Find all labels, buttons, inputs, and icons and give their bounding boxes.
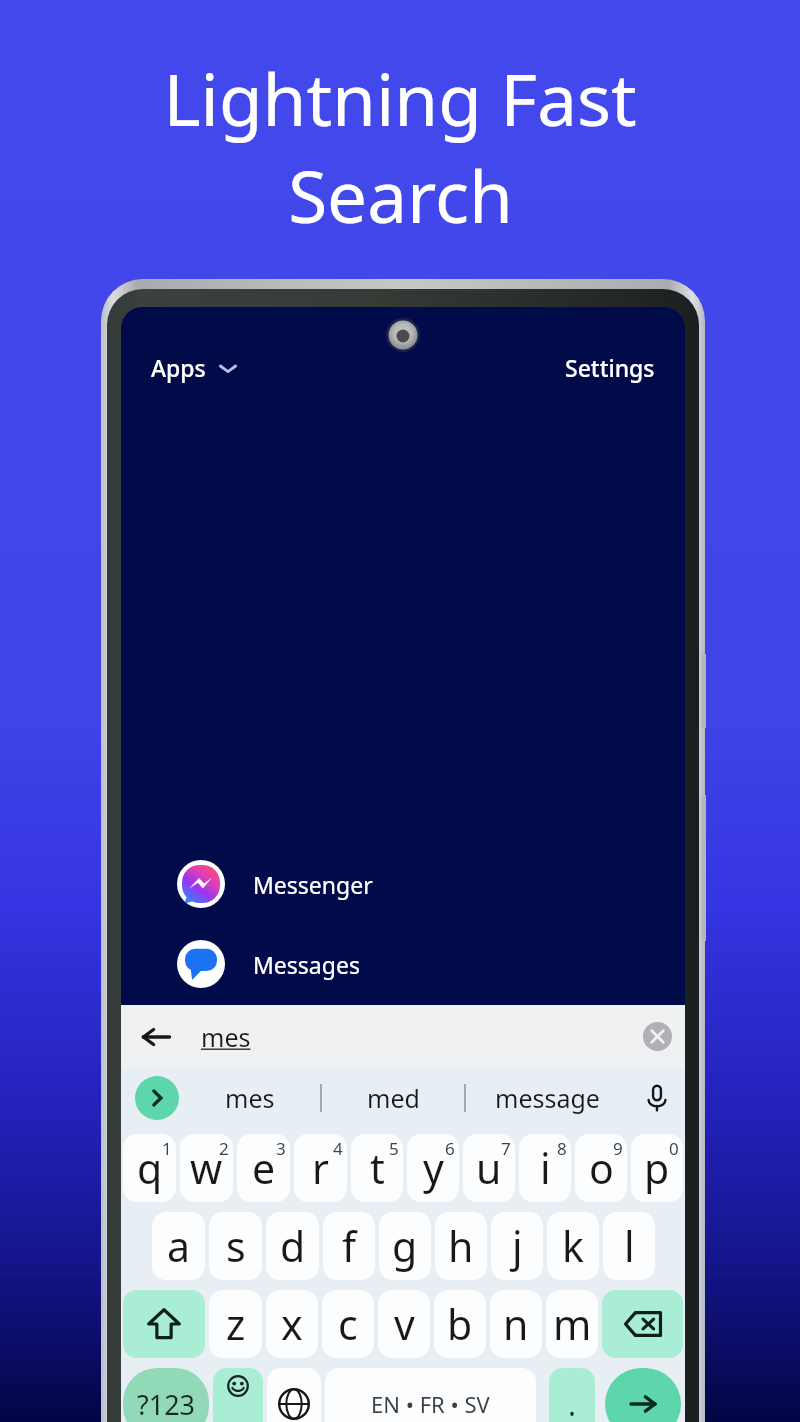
button[interactable]: r	[294, 1134, 347, 1202]
button[interactable]: f	[323, 1212, 375, 1280]
button[interactable]: l	[603, 1212, 655, 1280]
button[interactable]: h	[435, 1212, 487, 1280]
button[interactable]: Messages	[121, 936, 685, 992]
staticText: s	[226, 1218, 246, 1274]
staticText: mes	[225, 1081, 275, 1115]
button[interactable]: Change language	[267, 1368, 321, 1422]
button[interactable]: e	[237, 1134, 290, 1202]
button[interactable]: Clear search	[643, 1022, 672, 1051]
button[interactable]: Messenger	[121, 856, 685, 912]
button[interactable]: x	[266, 1290, 318, 1358]
button[interactable]: y	[407, 1134, 459, 1202]
button[interactable]: w	[180, 1134, 233, 1202]
button[interactable]: t	[351, 1134, 403, 1202]
staticText: g	[392, 1218, 418, 1274]
staticText: 7	[501, 1137, 511, 1160]
button[interactable]: mes	[179, 1068, 320, 1128]
staticText: 8	[557, 1137, 567, 1160]
button[interactable]: Expand suggestions	[135, 1076, 179, 1120]
staticText: Lightning Fast	[163, 50, 637, 147]
staticText: r	[312, 1140, 329, 1196]
button[interactable]: o	[575, 1134, 627, 1202]
staticText: Settings	[565, 352, 655, 383]
staticText: p	[644, 1140, 670, 1196]
staticText: h	[448, 1218, 474, 1274]
staticText: 5	[389, 1137, 399, 1160]
button[interactable]: j	[491, 1212, 543, 1280]
button[interactable]: Enter	[605, 1368, 681, 1422]
staticText: c	[338, 1296, 358, 1352]
staticText: b	[447, 1296, 473, 1352]
button[interactable]: Apps	[151, 352, 238, 383]
button[interactable]: b	[434, 1290, 486, 1358]
button[interactable]: Backspace	[602, 1290, 683, 1358]
staticText: v	[394, 1296, 415, 1352]
staticText: message	[495, 1081, 600, 1115]
staticText: Messages	[253, 949, 360, 980]
staticText: ?123	[137, 1386, 196, 1422]
staticText: 1	[162, 1137, 172, 1160]
staticText: q	[137, 1140, 163, 1196]
button[interactable]: Shift	[123, 1290, 205, 1358]
button[interactable]: Period	[549, 1368, 595, 1422]
button[interactable]: Voice input	[629, 1068, 685, 1128]
staticText: d	[280, 1218, 306, 1274]
staticText: o	[589, 1140, 614, 1196]
staticText: j	[512, 1218, 523, 1274]
button[interactable]: i	[519, 1134, 571, 1202]
staticText: EN • FR • SV	[371, 1389, 490, 1419]
staticText: Apps	[151, 352, 206, 383]
button[interactable]: Emoji	[213, 1368, 263, 1422]
staticText: w	[190, 1140, 223, 1196]
button[interactable]: med	[322, 1068, 464, 1128]
staticText: z	[226, 1296, 246, 1352]
staticText: 3	[276, 1137, 286, 1160]
staticText: med	[367, 1081, 420, 1115]
staticText: f	[342, 1218, 357, 1274]
button[interactable]: v	[378, 1290, 430, 1358]
button[interactable]: message	[466, 1068, 629, 1128]
staticText: 9	[613, 1137, 623, 1160]
button[interactable]: c	[322, 1290, 374, 1358]
staticText: 2	[219, 1137, 229, 1160]
staticText: i	[540, 1140, 551, 1196]
staticText: u	[476, 1140, 502, 1196]
staticText: x	[281, 1296, 303, 1352]
button[interactable]: n	[490, 1290, 542, 1358]
button[interactable]: m	[546, 1290, 598, 1358]
staticText: mes	[201, 1020, 251, 1054]
staticText: a	[167, 1218, 191, 1274]
button[interactable]: EN • FR • SV	[325, 1368, 536, 1422]
button[interactable]: d	[266, 1212, 319, 1280]
staticText: e	[252, 1140, 276, 1196]
staticText: m	[553, 1296, 592, 1352]
button[interactable]: s	[209, 1212, 262, 1280]
staticText: 6	[445, 1137, 455, 1160]
staticText: Search	[288, 147, 513, 244]
button[interactable]: z	[209, 1290, 262, 1358]
button[interactable]: a	[152, 1212, 205, 1280]
button[interactable]: k	[547, 1212, 599, 1280]
staticText: y	[423, 1140, 444, 1196]
staticText: k	[562, 1218, 584, 1274]
button[interactable]: Settings	[565, 352, 655, 383]
button[interactable]: u	[463, 1134, 515, 1202]
staticText: l	[624, 1218, 635, 1274]
button[interactable]: p	[631, 1134, 683, 1202]
staticText: t	[370, 1140, 385, 1196]
staticText: 0	[669, 1137, 679, 1160]
button[interactable]: q	[123, 1134, 176, 1202]
button[interactable]: ?123	[123, 1368, 209, 1422]
button[interactable]: g	[379, 1212, 431, 1280]
staticText: Messenger	[253, 869, 373, 900]
staticText: 4	[333, 1137, 343, 1160]
button[interactable]: Back	[137, 1018, 175, 1056]
staticText: .	[568, 1384, 577, 1422]
staticText: n	[503, 1296, 529, 1352]
